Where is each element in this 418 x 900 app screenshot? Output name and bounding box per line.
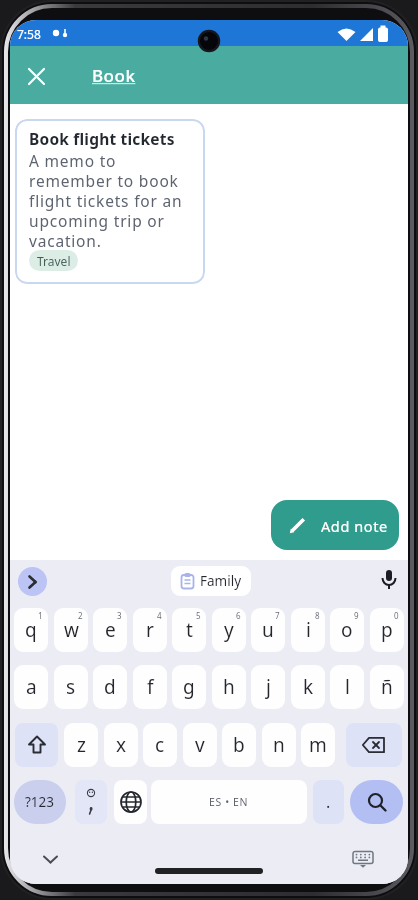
button[interactable]: . <box>313 780 344 824</box>
button[interactable]: a <box>14 665 48 709</box>
button[interactable]: u <box>251 608 285 652</box>
button[interactable]: k <box>291 665 325 709</box>
staticText: 4 <box>157 610 162 621</box>
staticText: m <box>309 732 327 758</box>
button[interactable] <box>18 567 47 596</box>
staticText: i <box>306 617 311 643</box>
staticText: 3 <box>117 610 122 621</box>
staticText: o <box>341 617 353 643</box>
button[interactable] <box>350 780 403 824</box>
staticText: q <box>25 617 37 643</box>
staticText: ñ <box>381 674 393 700</box>
staticText: a <box>26 674 37 700</box>
staticText: z <box>77 732 86 758</box>
button[interactable]: m <box>301 723 335 767</box>
staticText: x <box>116 732 127 758</box>
button[interactable]: t <box>172 608 206 652</box>
staticText: u <box>262 617 274 643</box>
button[interactable]: d <box>93 665 127 709</box>
staticText: s <box>66 674 76 700</box>
button[interactable]: n <box>262 723 296 767</box>
staticText: Book flight tickets <box>29 128 175 149</box>
staticText: 9 <box>354 610 359 621</box>
staticText: v <box>195 732 205 758</box>
button[interactable]: ?123 <box>14 780 66 824</box>
staticText: . <box>326 791 331 813</box>
button[interactable]: r <box>133 608 167 652</box>
staticText: f <box>147 674 154 700</box>
button[interactable]: i <box>291 608 325 652</box>
staticText: e <box>105 617 116 643</box>
button[interactable]: h <box>212 665 246 709</box>
button[interactable]: Family <box>171 566 251 596</box>
button[interactable]: w <box>54 608 88 652</box>
button[interactable]: v <box>183 723 217 767</box>
staticText: l <box>345 674 350 700</box>
button[interactable] <box>15 723 58 767</box>
button[interactable]: x <box>104 723 138 767</box>
button[interactable]: b <box>222 723 256 767</box>
staticText: ES • EN <box>209 795 249 809</box>
button[interactable]: q <box>14 608 48 652</box>
button[interactable]: e <box>93 608 127 652</box>
button[interactable]: p <box>370 608 404 652</box>
button[interactable]: f <box>133 665 167 709</box>
staticText: c <box>155 732 165 758</box>
staticText: 2 <box>78 610 83 621</box>
staticText: Book <box>92 64 136 87</box>
button[interactable] <box>75 780 107 824</box>
staticText: ?123 <box>25 793 55 811</box>
staticText: 0 <box>394 610 399 621</box>
staticText: Add note <box>321 516 388 536</box>
button[interactable]: y <box>212 608 246 652</box>
staticText: p <box>381 617 393 643</box>
button[interactable]: Add note <box>271 500 399 550</box>
staticText: 7 <box>275 610 280 621</box>
button[interactable]: z <box>64 723 98 767</box>
button[interactable]: s <box>54 665 88 709</box>
button[interactable] <box>346 723 402 767</box>
staticText: h <box>223 674 235 700</box>
button[interactable] <box>23 63 49 89</box>
button[interactable]: c <box>143 723 177 767</box>
staticText: t <box>186 617 193 643</box>
staticText: w <box>64 617 79 643</box>
button[interactable]: g <box>172 665 206 709</box>
button[interactable]: Book flight tickets <box>15 119 205 284</box>
staticText: A memo to remember to book flight ticket… <box>29 150 183 251</box>
button[interactable]: o <box>330 608 364 652</box>
button[interactable]: j <box>251 665 285 709</box>
button[interactable] <box>376 566 402 596</box>
staticText: 8 <box>315 610 320 621</box>
staticText: Family <box>200 572 242 590</box>
staticText: b <box>233 732 245 758</box>
staticText: 6 <box>236 610 241 621</box>
button[interactable]: ñ <box>370 665 404 709</box>
staticText: d <box>104 674 116 700</box>
button[interactable]: l <box>330 665 364 709</box>
button[interactable]: ES • EN <box>151 780 307 824</box>
button[interactable] <box>114 780 147 824</box>
staticText: j <box>266 674 271 700</box>
staticText: y <box>224 617 234 643</box>
staticText: 1 <box>38 610 43 621</box>
staticText: r <box>146 617 154 643</box>
staticText: g <box>183 674 195 700</box>
staticText: Travel <box>37 253 71 269</box>
staticText: 7:58 <box>17 26 41 42</box>
staticText: 5 <box>196 610 201 621</box>
staticText: k <box>303 674 314 700</box>
staticText: n <box>273 732 285 758</box>
